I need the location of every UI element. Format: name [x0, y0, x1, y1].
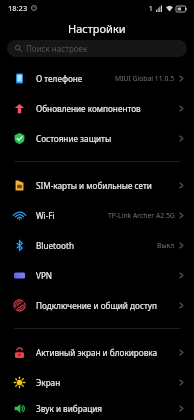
staticText: VPN [36, 270, 53, 281]
staticText: Звук и вибрация [36, 403, 103, 414]
staticText: TP-Link Archer A2 5G [108, 211, 175, 220]
button[interactable]: SIM-карты и мобильные сети [0, 170, 194, 200]
staticText: Обновление компонентов [36, 103, 141, 114]
button[interactable]: О телефоне [0, 63, 194, 93]
button[interactable]: Подключение и общий доступ [0, 290, 194, 320]
staticText: Экран [36, 377, 61, 388]
staticText: О телефоне [36, 73, 83, 84]
button[interactable]: Wi-Fi [0, 200, 194, 230]
staticText: Поиск настроек [26, 43, 88, 54]
staticText: MIUI Global 11.0.5 [115, 74, 175, 83]
button[interactable]: Экран [0, 367, 194, 397]
staticText: Bluetooth [36, 240, 74, 251]
staticText: Выкл [157, 241, 175, 250]
button[interactable]: Звук и вибрация [0, 397, 194, 420]
button[interactable]: VPN [0, 260, 194, 290]
staticText: SIM-карты и мобильные сети [36, 180, 152, 191]
button[interactable]: Bluetooth [0, 230, 194, 260]
staticText: Wi-Fi [36, 210, 55, 221]
staticText: Активный экран и блокировка [36, 347, 158, 358]
staticText: Настройки [68, 21, 126, 36]
staticText: Подключение и общий доступ [36, 300, 157, 311]
staticText: 1 [149, 4, 153, 13]
button[interactable]: Обновление компонентов [0, 93, 194, 123]
button[interactable]: Активный экран и блокировка [0, 337, 194, 367]
button[interactable]: Поиск настроек [7, 40, 187, 57]
button[interactable]: Состояние защиты [0, 123, 194, 153]
staticText: 18:23 [8, 3, 28, 13]
staticText: Состояние защиты [36, 133, 112, 144]
